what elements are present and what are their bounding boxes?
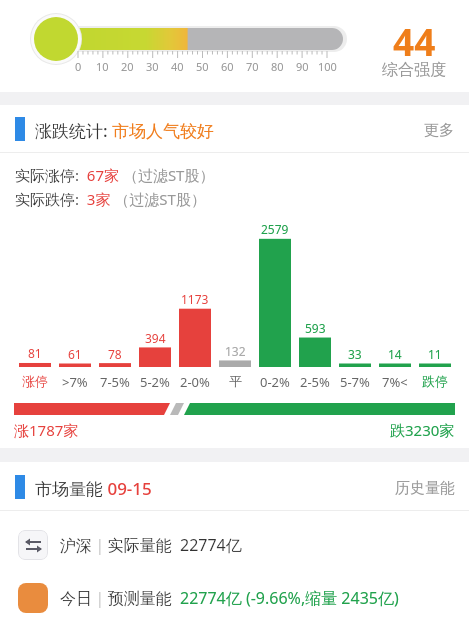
button[interactable]: 今日｜预测量能 22774亿 (-9.66%,缩量 2435亿) [18, 583, 469, 613]
staticText: 100 [318, 59, 337, 74]
staticText: 70 [246, 59, 259, 74]
staticText: 跌3230家 [390, 420, 455, 440]
staticText: 394 [145, 330, 166, 346]
staticText: 90 [296, 59, 309, 74]
staticText: 40 [171, 59, 184, 74]
staticText: 81 [28, 345, 42, 361]
staticText: 14 [388, 346, 402, 362]
staticText: 20 [121, 59, 134, 74]
staticText: 5-2% [140, 373, 170, 391]
staticText: 1173 [181, 291, 209, 307]
button[interactable]: 市场量能 09-15 [0, 462, 469, 510]
button[interactable]: 沪深｜实际量能 22774亿 [18, 530, 469, 560]
staticText: 5-7% [340, 373, 370, 391]
staticText: 跌停 [422, 373, 448, 389]
staticText: 60 [221, 59, 234, 74]
staticText: 平 [229, 373, 242, 389]
staticText: 历史量能 [395, 479, 455, 498]
staticText: 7-5% [100, 373, 130, 391]
staticText: 市场量能 09-15 [35, 477, 152, 500]
staticText: 更多 [424, 121, 454, 140]
staticText: 0-2% [260, 373, 290, 391]
staticText: 61 [68, 346, 82, 362]
staticText: 实际跌停: 3家 （过滤ST股） [15, 189, 206, 209]
staticText: 2-5% [300, 373, 330, 391]
staticText: 80 [271, 59, 284, 74]
staticText: 涨1787家 [14, 420, 79, 440]
staticText: 实际涨停: 67家 （过滤ST股） [15, 165, 215, 185]
staticText: 11 [428, 346, 442, 362]
staticText: 7%< [382, 373, 408, 391]
staticText: 10 [96, 59, 109, 74]
staticText: 0 [75, 59, 82, 74]
staticText: 综合强度 [382, 60, 446, 80]
staticText: 今日｜预测量能 22774亿 (-9.66%,缩量 2435亿) [60, 587, 399, 609]
staticText: >7% [62, 373, 88, 391]
staticText: 30 [146, 59, 159, 74]
staticText: 沪深｜实际量能 22774亿 [60, 534, 242, 556]
staticText: 132 [225, 343, 246, 359]
staticText: 涨跌统计: 市场人气较好 [35, 119, 215, 142]
button[interactable]: 涨跌统计: 市场人气较好 [0, 105, 469, 152]
staticText: 44 [393, 16, 436, 66]
staticText: 50 [196, 59, 209, 74]
staticText: 78 [108, 346, 122, 362]
staticText: 2-0% [180, 373, 210, 391]
staticText: 593 [305, 320, 326, 336]
staticText: 2579 [261, 221, 289, 237]
staticText: 33 [348, 346, 362, 362]
staticText: 涨停 [22, 373, 48, 389]
